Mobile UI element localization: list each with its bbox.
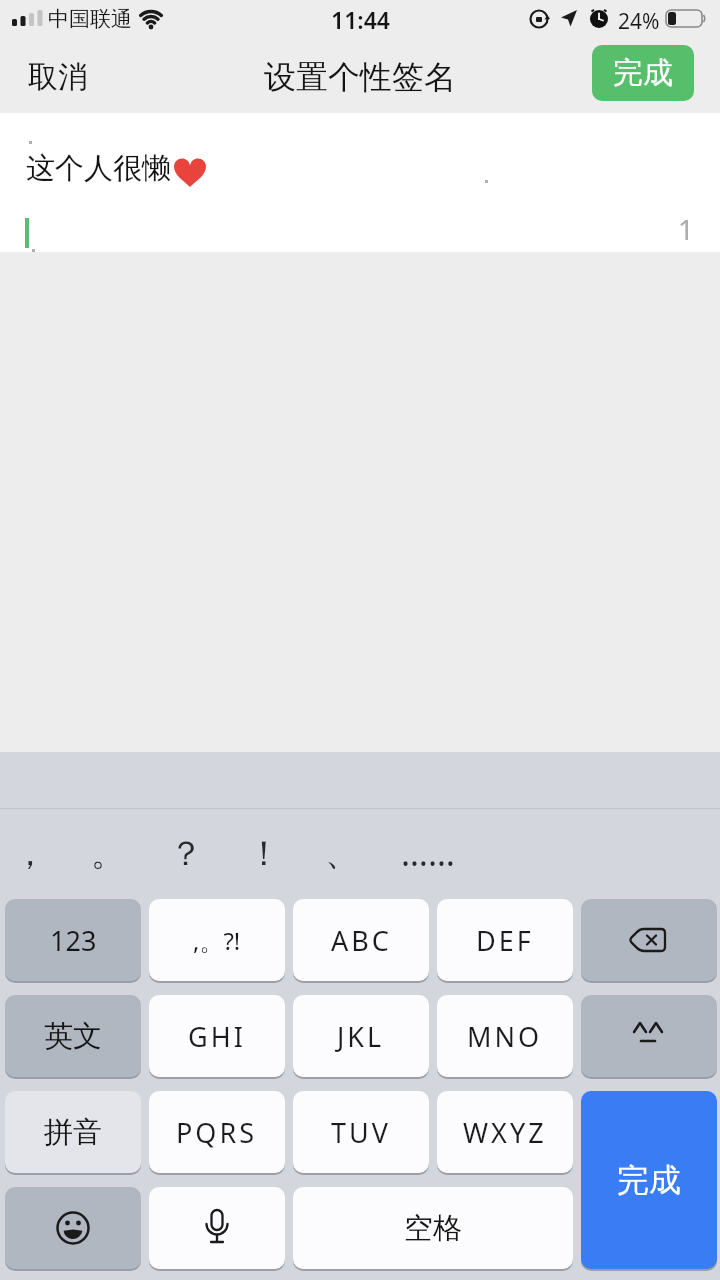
staticText: 24%: [618, 7, 660, 36]
button[interactable]: 拼音: [5, 1091, 141, 1173]
button[interactable]: [5, 1187, 141, 1269]
staticText: 中国联通: [48, 6, 132, 32]
button[interactable]: DEF: [437, 899, 573, 981]
button[interactable]: [149, 1187, 285, 1269]
staticText: 空格: [404, 1210, 462, 1247]
staticText: TUV: [331, 1114, 391, 1151]
staticText: PQRS: [176, 1114, 258, 1151]
staticText: ,。?!: [193, 924, 241, 957]
button[interactable]: MNO: [437, 995, 573, 1077]
staticText: WXYZ: [463, 1114, 547, 1151]
staticText: ，: [13, 832, 47, 875]
button[interactable]: [581, 899, 717, 981]
staticText: 拼音: [44, 1114, 102, 1151]
button[interactable]: [581, 995, 717, 1077]
button[interactable]: 英文: [5, 995, 141, 1077]
button[interactable]: PQRS: [149, 1091, 285, 1173]
button[interactable]: WXYZ: [437, 1091, 573, 1173]
staticText: 取消: [28, 58, 88, 96]
button[interactable]: JKL: [293, 995, 429, 1077]
staticText: 完成: [613, 54, 673, 92]
button[interactable]: 123: [5, 899, 141, 981]
staticText: 。: [91, 832, 125, 875]
staticText: 设置个性签名: [264, 57, 456, 97]
button[interactable]: 。: [72, 820, 144, 886]
button[interactable]: 、: [306, 820, 378, 886]
button[interactable]: ！: [228, 820, 300, 886]
button[interactable]: ABC: [293, 899, 429, 981]
staticText: ……: [401, 830, 455, 876]
staticText: JKL: [337, 1018, 385, 1055]
button[interactable]: GHI: [149, 995, 285, 1077]
staticText: 11:44: [331, 4, 390, 35]
button[interactable]: 空格: [293, 1187, 573, 1269]
staticText: ！: [247, 832, 281, 875]
button[interactable]: ？: [150, 820, 222, 886]
button[interactable]: 完成: [581, 1091, 717, 1269]
button[interactable]: 完成: [592, 45, 694, 101]
staticText: 123: [50, 922, 97, 959]
staticText: ？: [169, 832, 203, 875]
staticText: 完成: [617, 1160, 681, 1200]
staticText: DEF: [476, 922, 534, 959]
staticText: 这个人很懒: [26, 150, 171, 187]
staticText: GHI: [188, 1018, 246, 1055]
button[interactable]: ，: [0, 820, 66, 886]
button[interactable]: ,。?!: [149, 899, 285, 981]
button[interactable]: ……: [392, 820, 464, 886]
staticText: 1: [678, 210, 695, 248]
staticText: 、: [325, 832, 359, 875]
staticText: ABC: [331, 922, 392, 959]
staticText: 英文: [44, 1018, 102, 1055]
button[interactable]: TUV: [293, 1091, 429, 1173]
staticText: MNO: [467, 1018, 543, 1055]
button[interactable]: 取消: [28, 52, 118, 102]
